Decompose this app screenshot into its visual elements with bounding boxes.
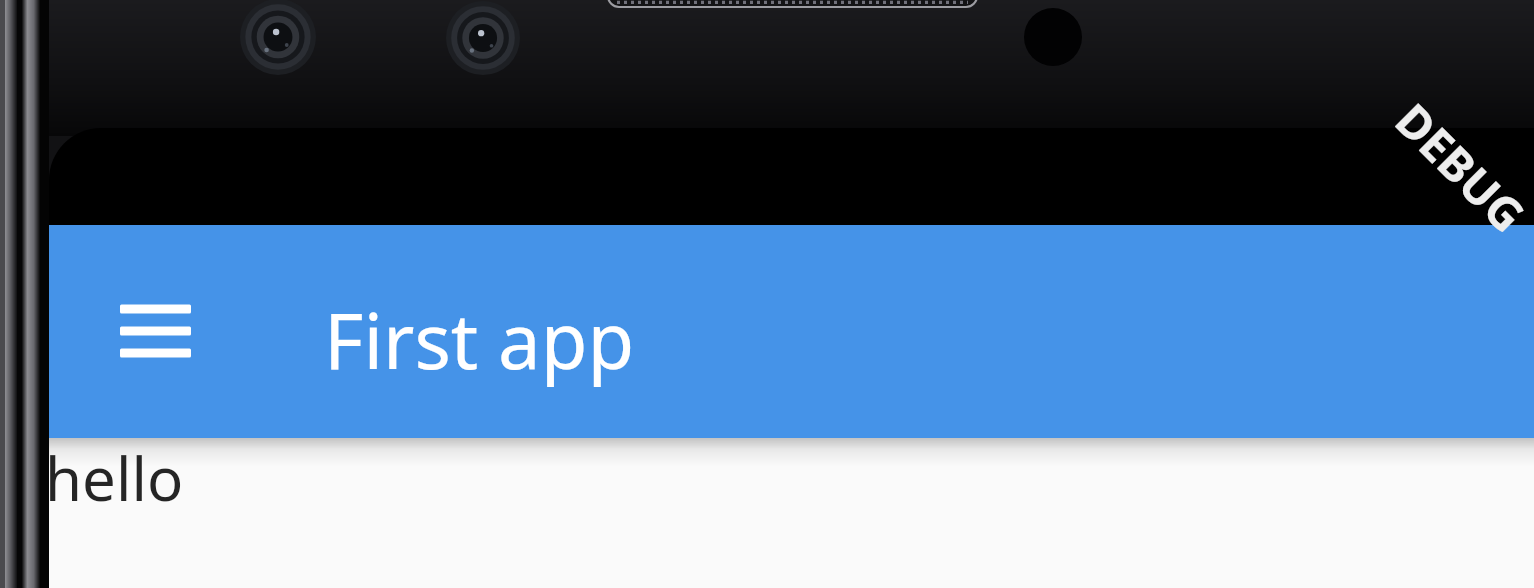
staticText: DEBUG bbox=[1383, 89, 1534, 245]
staticText: First app bbox=[324, 288, 635, 392]
staticText: hello bbox=[45, 437, 184, 519]
button[interactable]: Open navigation menu bbox=[96, 276, 216, 388]
